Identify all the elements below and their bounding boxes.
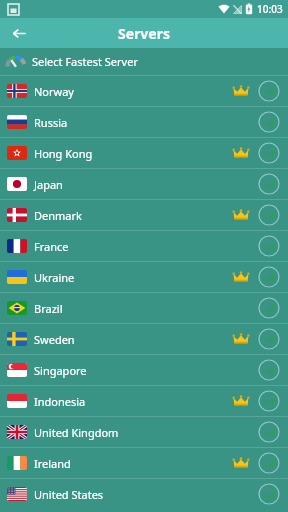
button[interactable]: Select Singapore [258, 359, 280, 381]
button[interactable]: Select United States [258, 483, 280, 505]
staticText: Brazil [34, 301, 63, 316]
button[interactable]: Ireland [0, 448, 288, 478]
button[interactable]: United Kingdom [0, 417, 288, 447]
button[interactable]: Select Russia [258, 111, 280, 133]
staticText: Indonesia [34, 394, 86, 409]
button[interactable]: Sweden [0, 324, 288, 354]
staticText: United Kingdom [34, 425, 119, 440]
button[interactable]: Select Brazil [258, 297, 280, 319]
button[interactable]: Select Hong Kong [258, 142, 280, 164]
button[interactable]: Select France [258, 235, 280, 257]
staticText: France [34, 239, 69, 254]
staticText: Denmark [34, 208, 82, 223]
staticText: Servers [118, 24, 170, 43]
staticText: United States [34, 487, 104, 502]
button[interactable]: Brazil [0, 293, 288, 323]
staticText: Sweden [34, 332, 75, 347]
button[interactable]: Singapore [0, 355, 288, 385]
button[interactable]: France [0, 231, 288, 261]
staticText: Norway [34, 84, 74, 99]
staticText: Ireland [34, 456, 71, 471]
button[interactable]: Denmark [0, 200, 288, 230]
staticText: Singapore [34, 363, 87, 378]
button[interactable]: Select United Kingdom [258, 421, 280, 443]
button[interactable]: Select Fastest Server [0, 48, 288, 75]
button[interactable]: Select Ukraine [258, 266, 280, 288]
staticText: Japan [34, 177, 63, 192]
button[interactable]: Back [6, 20, 32, 46]
button[interactable]: Select Ireland [258, 452, 280, 474]
button[interactable]: Russia [0, 107, 288, 137]
button[interactable]: Select Denmark [258, 204, 280, 226]
staticText: Select Fastest Server [32, 54, 138, 69]
button[interactable]: Norway [0, 76, 288, 106]
staticText: 10:03 [257, 2, 283, 16]
button[interactable]: Hong Kong [0, 138, 288, 168]
button[interactable]: Japan [0, 169, 288, 199]
button[interactable]: Ukraine [0, 262, 288, 292]
button[interactable]: Select Indonesia [258, 390, 280, 412]
staticText: Ukraine [34, 270, 75, 285]
button[interactable]: Select Sweden [258, 328, 280, 350]
staticText: Hong Kong [34, 146, 93, 161]
button[interactable]: Select Japan [258, 173, 280, 195]
button[interactable]: Select Norway [258, 80, 280, 102]
button[interactable]: United States [0, 479, 288, 509]
button[interactable]: Indonesia [0, 386, 288, 416]
staticText: Russia [34, 115, 68, 130]
